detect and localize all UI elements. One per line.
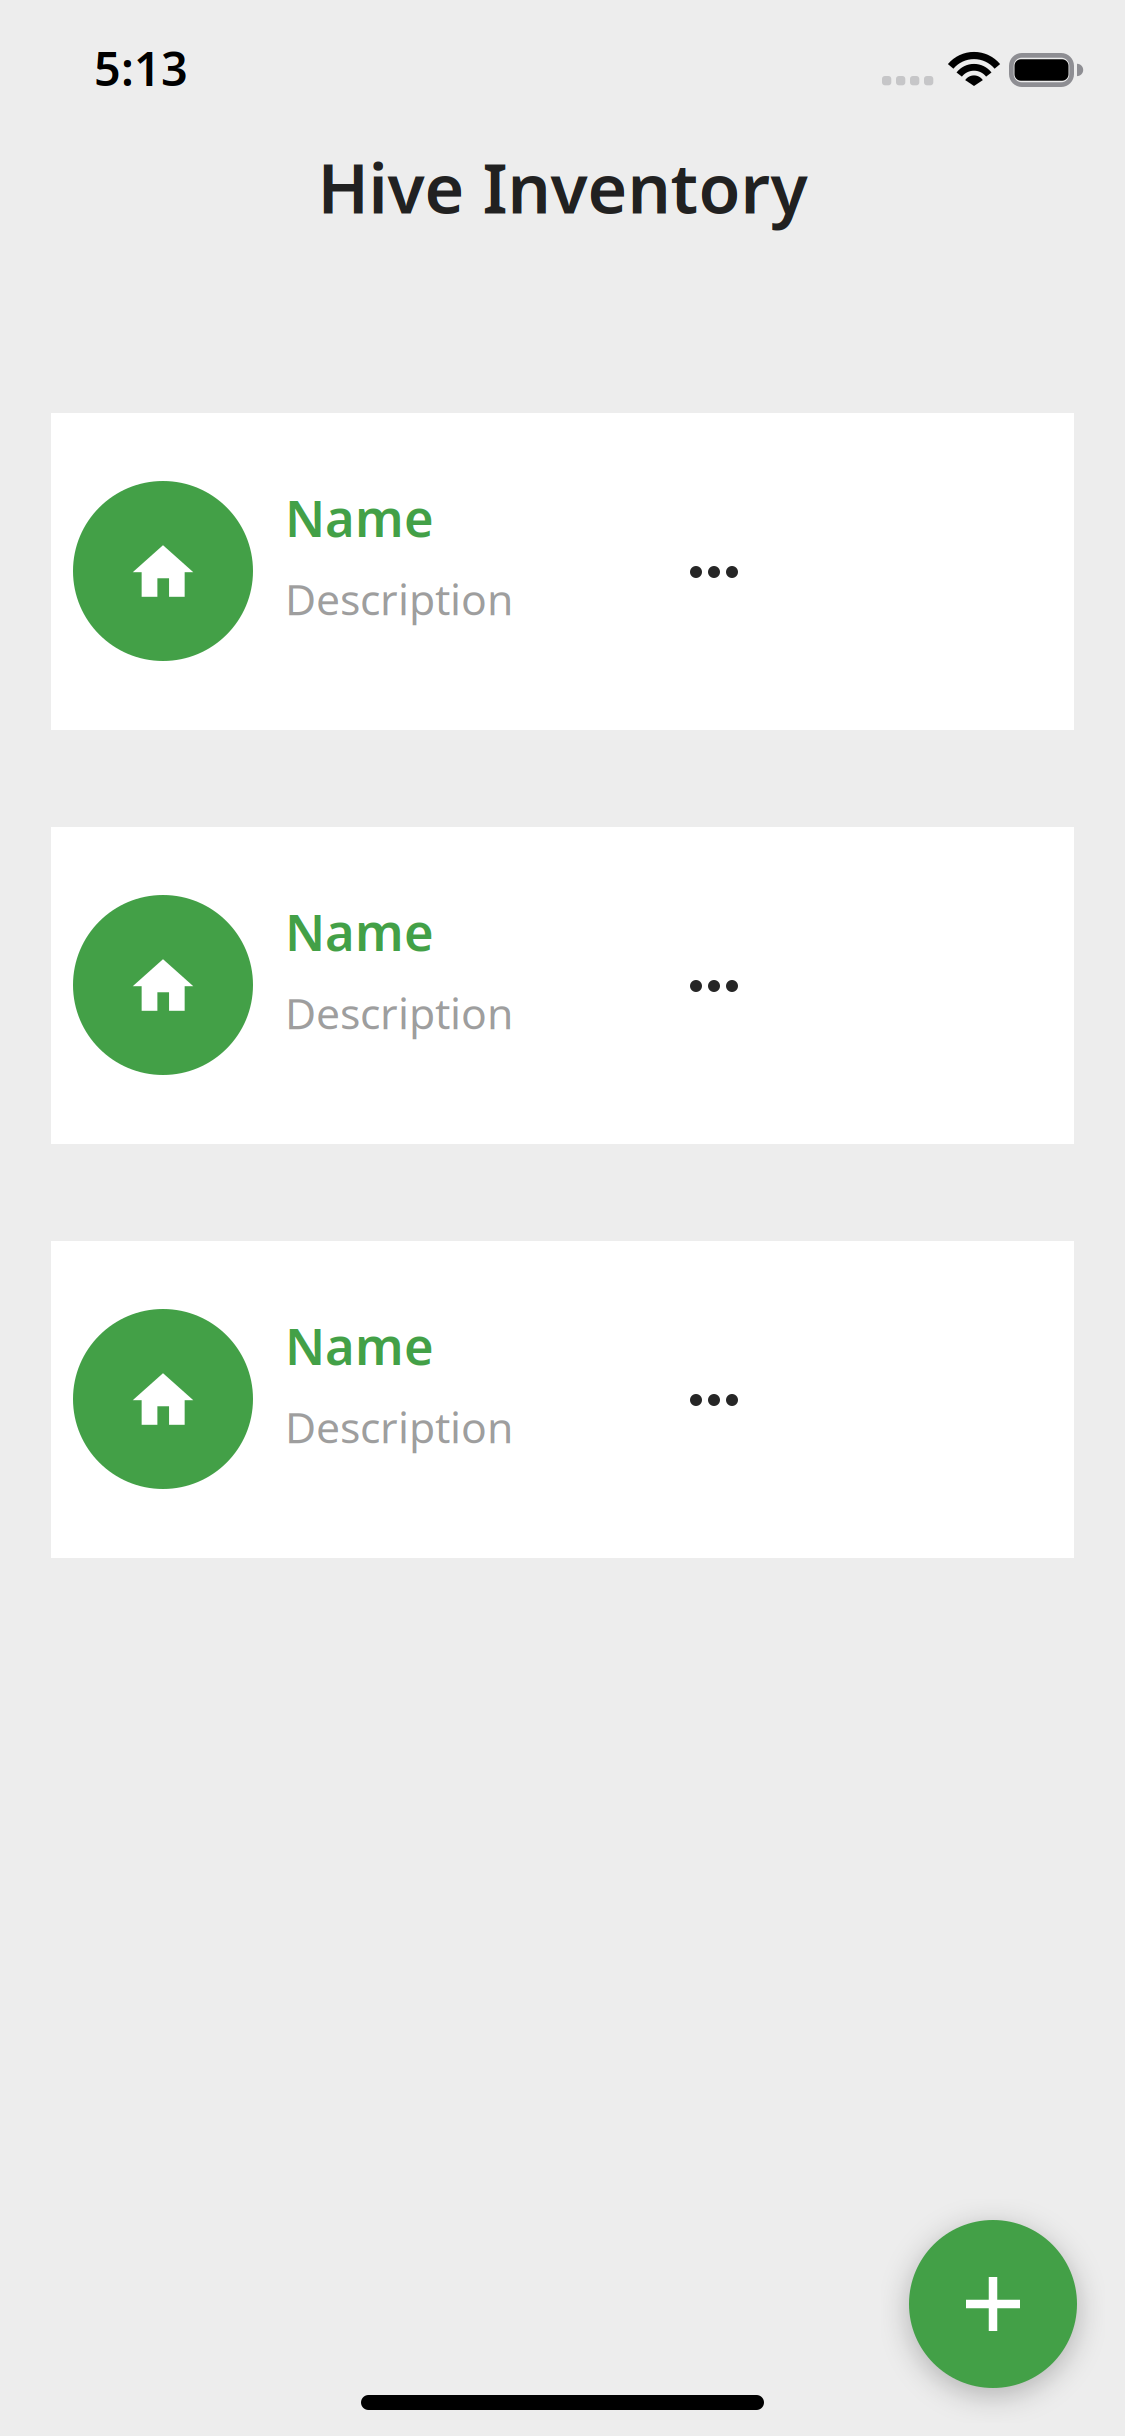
button[interactable]: Name [51,413,1074,730]
button[interactable]: More options [654,1340,774,1460]
button[interactable]: More options [654,926,774,1046]
staticText: 5:13 [94,37,188,99]
button[interactable]: Name [51,827,1074,1144]
staticText: Name [285,484,434,551]
staticText: Hive Inventory [317,142,807,232]
staticText: Name [285,1312,434,1379]
staticText: Name [285,898,434,965]
staticText: Description [285,984,513,1041]
staticText: Description [285,570,513,627]
button[interactable]: Name [51,1241,1074,1558]
staticText: Description [285,1398,513,1455]
button[interactable]: More options [654,512,774,632]
button[interactable]: Add item [909,2220,1077,2388]
